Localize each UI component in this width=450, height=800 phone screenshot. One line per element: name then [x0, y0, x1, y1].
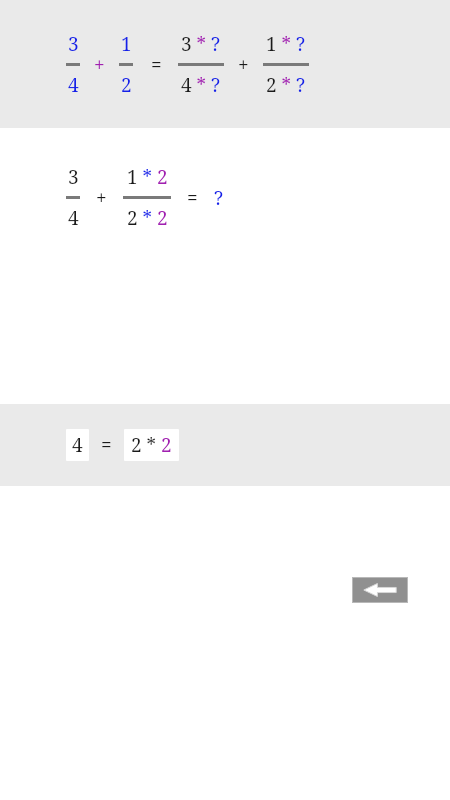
- button[interactable]: 4: [66, 429, 89, 461]
- staticText: 1 * 2: [127, 164, 168, 190]
- button[interactable]: Back: [353, 578, 407, 602]
- staticText: 1 * ?: [266, 31, 306, 57]
- staticText: +: [238, 52, 249, 78]
- staticText: 2 * 2: [131, 432, 172, 458]
- staticText: 2: [121, 72, 132, 98]
- staticText: 3: [68, 31, 79, 57]
- button[interactable]: 2 * 2: [124, 429, 179, 461]
- staticText: 2 * ?: [266, 72, 306, 98]
- staticText: 4: [72, 432, 83, 458]
- staticText: 3: [68, 164, 79, 190]
- staticText: =: [101, 432, 112, 458]
- staticText: ?: [214, 185, 224, 211]
- staticText: +: [94, 52, 105, 78]
- staticText: 2 * 2: [127, 205, 168, 231]
- staticText: 4: [68, 72, 79, 98]
- staticText: 4 * ?: [181, 72, 221, 98]
- staticText: =: [151, 52, 162, 78]
- staticText: 3 * ?: [181, 31, 221, 57]
- staticText: 1: [121, 31, 132, 57]
- staticText: =: [187, 185, 198, 211]
- staticText: 4: [68, 205, 79, 231]
- staticText: +: [96, 185, 107, 211]
